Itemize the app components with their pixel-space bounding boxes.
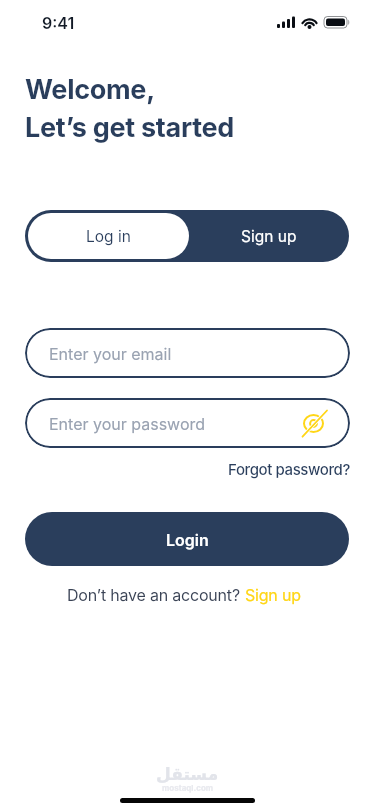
staticText: Login	[166, 530, 209, 549]
button[interactable]	[302, 408, 332, 438]
button[interactable]: Sign up	[188, 210, 349, 262]
staticText: Enter your password	[49, 414, 206, 433]
button[interactable]: Forgot password?	[228, 460, 350, 478]
staticText: Log in	[86, 227, 131, 246]
button[interactable]: Sign up	[245, 585, 301, 604]
staticText: Sign up	[241, 227, 297, 246]
staticText: Welcome, Let’s get started	[25, 73, 234, 144]
button[interactable]: Enter your email	[25, 328, 350, 378]
staticText: Forgot password?	[228, 460, 350, 478]
button[interactable]: Login	[25, 512, 349, 566]
button[interactable]: Enter your password	[25, 398, 350, 448]
staticText: mostaql.com	[162, 783, 214, 793]
staticText: Don’t have an account?	[67, 585, 245, 604]
button[interactable]: Log in	[25, 210, 192, 262]
staticText: مستقل	[156, 764, 219, 784]
staticText: Sign up	[245, 585, 301, 604]
staticText: Enter your email	[49, 344, 172, 363]
staticText: 9:41	[42, 13, 75, 32]
